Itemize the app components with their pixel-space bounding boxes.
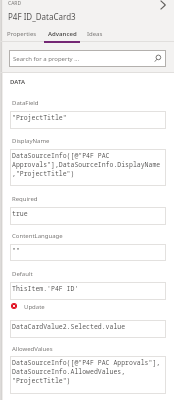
staticText: Ideas bbox=[87, 30, 103, 38]
button[interactable]: true bbox=[10, 207, 166, 225]
button[interactable]: "ProjectTitle" bbox=[10, 111, 166, 129]
staticText: DisplayName bbox=[12, 137, 50, 145]
staticText: Advanced bbox=[48, 30, 77, 38]
staticText: "ProjectTitle" bbox=[12, 113, 67, 122]
staticText: P4F ID_DataCard3 bbox=[8, 11, 76, 22]
button[interactable]: "" bbox=[10, 244, 166, 261]
staticText: DataSourceInfo.AllowedValues, bbox=[12, 367, 126, 376]
button[interactable]: ThisItem.'P4F ID' bbox=[10, 282, 166, 300]
staticText: DataCardValue2.Selected.value bbox=[12, 322, 126, 331]
staticText: Search for a property ... bbox=[13, 55, 153, 63]
button[interactable]: Search for a property ... bbox=[9, 50, 166, 67]
other: Error bbox=[11, 303, 17, 309]
staticText: Approvals"],DataSourceInfo.DisplayName bbox=[12, 160, 161, 169]
button[interactable]: DataSourceInfo([@"P4F PAC bbox=[10, 149, 166, 186]
button[interactable]: Ideas bbox=[82, 26, 108, 43]
staticText: DataSourceInfo([@"P4F PAC Approvals"], bbox=[12, 358, 161, 367]
staticText: DataField bbox=[12, 99, 39, 107]
button[interactable]: Advanced bbox=[44, 26, 80, 43]
staticText: "ProjectTitle") bbox=[12, 376, 71, 385]
staticText: ContentLanguage bbox=[12, 232, 63, 240]
staticText: DATA bbox=[10, 78, 25, 86]
staticText: DataSourceInfo([@"P4F PAC bbox=[12, 151, 110, 160]
button[interactable]: Expand bbox=[154, 0, 172, 14]
staticText: CARD bbox=[8, 0, 22, 7]
button[interactable]: DataSourceInfo([@"P4F PAC Approvals"], bbox=[10, 356, 166, 394]
staticText: Update bbox=[24, 303, 45, 311]
staticText: "" bbox=[12, 246, 20, 255]
staticText: ,"ProjectTitle") bbox=[12, 169, 75, 178]
staticText: Properties bbox=[7, 30, 37, 38]
staticText: true bbox=[12, 209, 28, 218]
staticText: ThisItem.'P4F ID' bbox=[12, 284, 79, 293]
button[interactable]: DataCardValue2.Selected.value bbox=[10, 320, 166, 338]
staticText: Required bbox=[12, 195, 38, 203]
button[interactable]: Properties bbox=[4, 26, 40, 43]
staticText: AllowedValues bbox=[12, 345, 53, 353]
staticText: Default bbox=[12, 270, 33, 278]
